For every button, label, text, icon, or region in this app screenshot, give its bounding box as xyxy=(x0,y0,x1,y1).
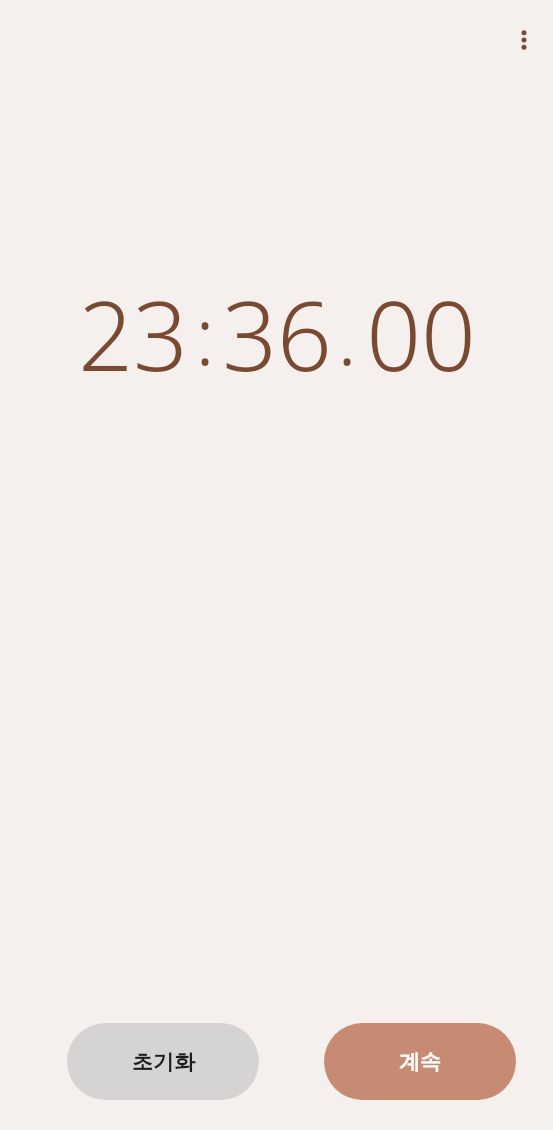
staticText: 23 xyxy=(78,268,188,399)
staticText: 계속 xyxy=(399,1049,441,1075)
button[interactable]: More options xyxy=(500,16,548,64)
staticText: 36 xyxy=(222,268,332,399)
staticText: 초기화 xyxy=(132,1049,195,1075)
staticText: 00 xyxy=(366,268,476,399)
button[interactable]: 초기화 xyxy=(67,1023,259,1100)
button[interactable]: 계속 xyxy=(324,1023,516,1100)
staticText: . xyxy=(337,279,357,388)
staticText: : xyxy=(195,279,215,388)
